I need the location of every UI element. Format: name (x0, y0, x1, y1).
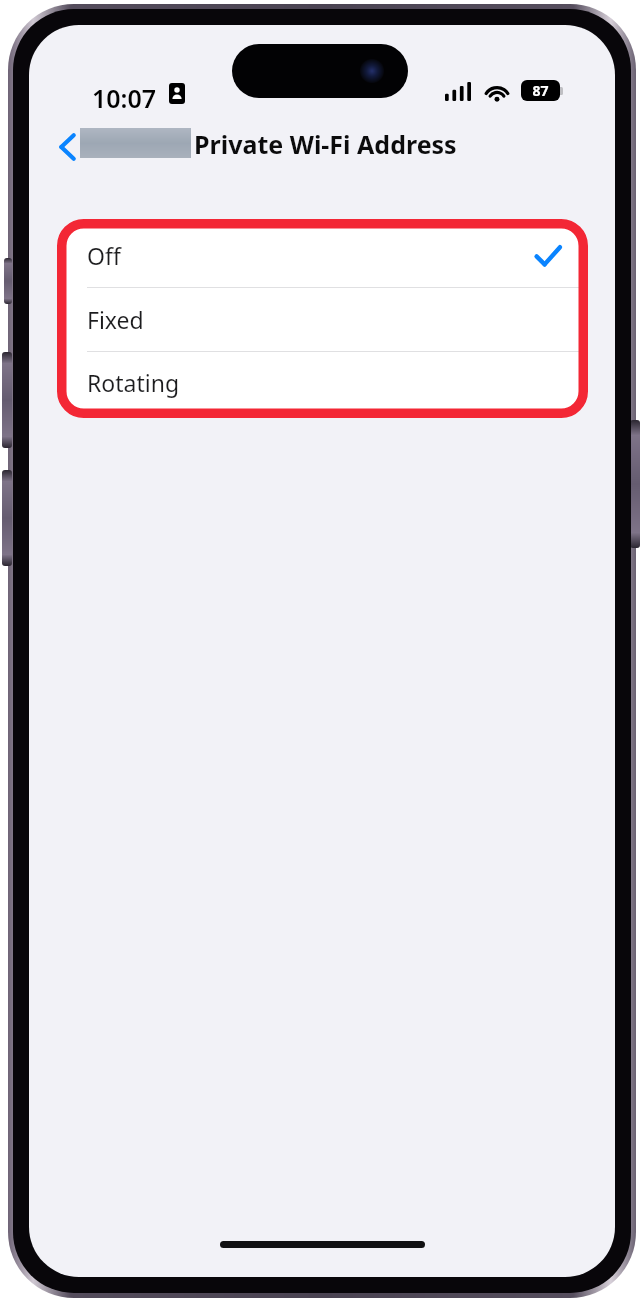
button[interactable]: Back (45, 123, 89, 171)
staticText: Private Wi-Fi Address (194, 127, 457, 161)
staticText: Rotating (87, 367, 180, 398)
staticText: Off (87, 240, 121, 271)
button[interactable]: Fixed (62, 288, 583, 351)
button[interactable]: Rotating (62, 352, 583, 413)
staticText: 87 (532, 81, 549, 100)
staticText: 10:07 (92, 81, 157, 115)
staticText: Fixed (87, 304, 144, 335)
button[interactable]: Off (62, 224, 583, 287)
